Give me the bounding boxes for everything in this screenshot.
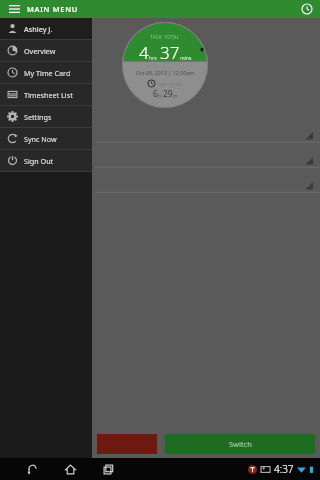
staticText: DAY TOTAL: [158, 81, 184, 87]
staticText: Sync Now: [24, 134, 57, 144]
button[interactable]: Home: [62, 461, 78, 477]
button[interactable]: Open navigation menu: [6, 1, 22, 17]
staticText: Overview: [24, 46, 56, 56]
staticText: TASK TOTAL: [150, 34, 180, 40]
button[interactable]: Sign Out: [0, 150, 92, 171]
staticText: 37: [160, 41, 180, 64]
staticText: m: [173, 93, 178, 99]
staticText: h: [158, 93, 161, 99]
button[interactable]: Sync Now: [0, 128, 92, 149]
button[interactable]: Clock in: [299, 1, 315, 17]
button[interactable]: My Time Card: [0, 62, 92, 83]
staticText: 29: [163, 88, 173, 100]
staticText: Settings: [24, 112, 52, 122]
staticText: Timesheet List: [24, 90, 73, 100]
staticText: Ashley J.: [24, 24, 53, 34]
staticText: mins: [180, 55, 192, 62]
button[interactable]: Recent apps: [100, 461, 116, 477]
button[interactable]: Settings: [0, 106, 92, 127]
button[interactable]: Timesheet row: [0, 118, 320, 143]
staticText: Sign Out: [24, 156, 54, 166]
staticText: 4: [139, 41, 149, 64]
button[interactable]: Back: [24, 461, 40, 477]
staticText: MAIN MENU: [27, 4, 78, 14]
button[interactable]: Ashley J.: [0, 18, 92, 39]
button[interactable]: Timesheet row: [0, 143, 320, 168]
staticText: hrs: [149, 55, 157, 62]
button[interactable]: Overview: [0, 40, 92, 61]
staticText: Switch: [229, 439, 252, 449]
staticText: 4:37: [274, 462, 294, 476]
button[interactable]: Switch: [165, 434, 315, 454]
button[interactable]: Timesheet row: [0, 168, 320, 193]
staticText: Oct 09, 2013 | 12:30am: [136, 69, 195, 76]
staticText: 6: [153, 88, 158, 100]
staticText: My Time Card: [24, 68, 71, 78]
button[interactable]: Timesheet List: [0, 84, 92, 105]
